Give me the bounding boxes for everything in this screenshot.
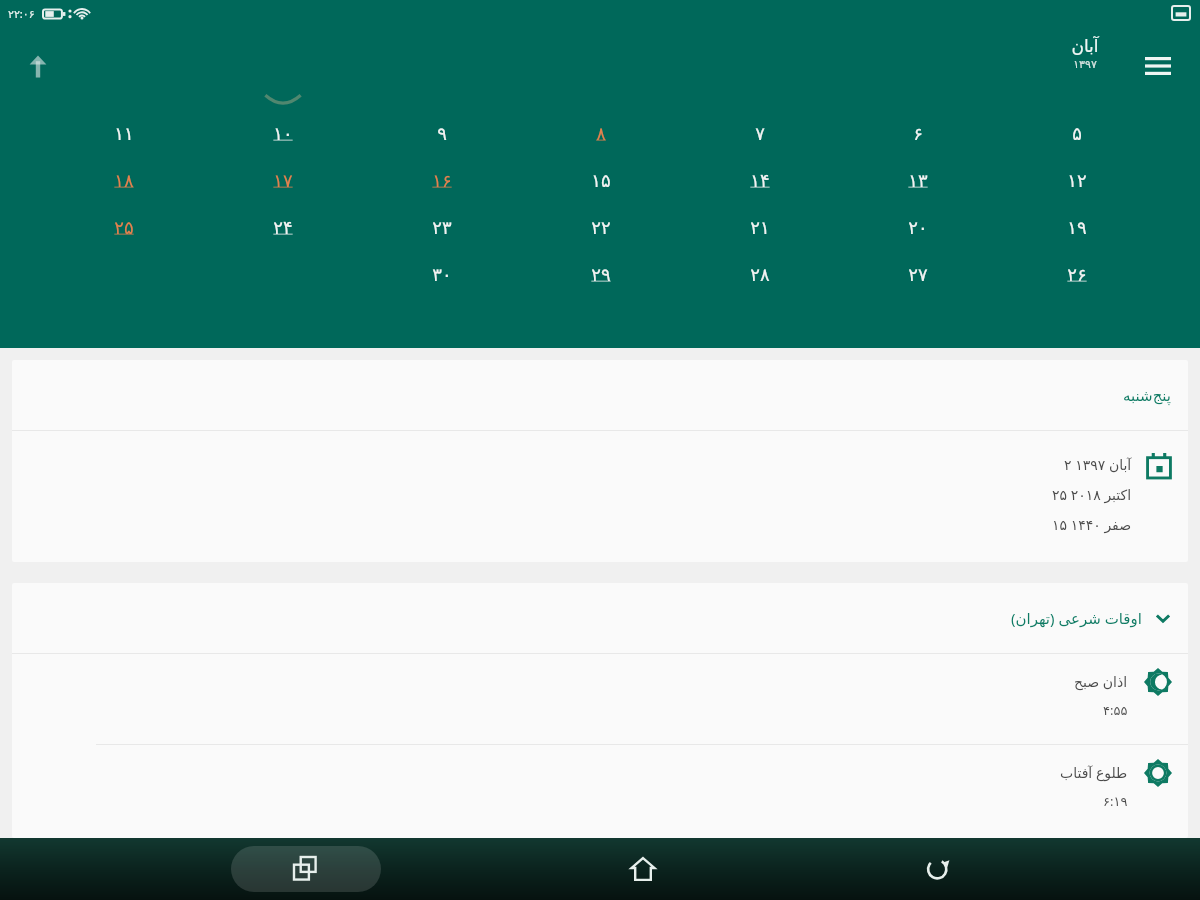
staticText: ۲۸ [750, 264, 770, 285]
button[interactable]: ۱۴ [727, 158, 793, 202]
button[interactable]: ۱۱ [91, 111, 157, 155]
staticText: اوقات شرعی (تهران) [1011, 608, 1142, 628]
button[interactable]: اوقات شرعی (تهران) [12, 583, 1188, 653]
staticText: ۱۴ [750, 170, 770, 191]
staticText: ۲۶ [1067, 264, 1087, 285]
button[interactable]: ۱۹ [1044, 205, 1110, 249]
button[interactable]: ۲۹ [568, 252, 634, 296]
button[interactable]: ۱۷ [250, 158, 316, 202]
staticText: ۱۶ [432, 170, 452, 191]
staticText: ۲۵ [114, 217, 134, 238]
other: Screenshot [1172, 6, 1190, 20]
button[interactable]: ۲۱ [727, 205, 793, 249]
button[interactable]: ۱۶ [409, 158, 475, 202]
staticText: ۱۸ [114, 170, 134, 191]
button[interactable]: ۱۳ [885, 158, 951, 202]
button[interactable]: Scroll up [16, 44, 60, 88]
button[interactable]: ۱۲ [1044, 158, 1110, 202]
staticText: ۱۵ صفر ۱۴۴۰ [1052, 515, 1132, 534]
staticText: طلوع آفتاب [1060, 763, 1128, 782]
button[interactable]: آبان [1045, 36, 1125, 71]
button[interactable]: ۵ [1044, 111, 1110, 155]
staticText: ۶:۱۹ [1103, 792, 1128, 810]
button[interactable]: ۲۰ [885, 205, 951, 249]
staticText: ۱۱ [114, 123, 134, 144]
staticText: ۱۷ [273, 170, 293, 191]
button[interactable]: طلوع آفتاب [12, 745, 1188, 835]
button[interactable]: Back [906, 838, 970, 900]
button[interactable]: Recents [231, 846, 381, 892]
staticText: ۱۳ [908, 170, 928, 191]
button[interactable]: ۲۲ [568, 205, 634, 249]
staticText: ۹ [437, 123, 447, 144]
button[interactable]: ۲۳ [409, 205, 475, 249]
staticText: ۶ [913, 123, 923, 144]
staticText: ۵ [1072, 123, 1082, 144]
staticText: پنج‌شنبه [1123, 387, 1172, 404]
staticText: ۲۴ [273, 217, 293, 238]
staticText: ۱۵ [591, 170, 611, 191]
staticText: ۲۰ [908, 217, 928, 238]
button[interactable]: Home [611, 838, 675, 900]
staticText: ۸ [596, 123, 606, 144]
staticText: ۲۱ [750, 217, 770, 238]
button[interactable]: اذان صبح [12, 654, 1188, 744]
button[interactable]: ۹ [409, 111, 475, 155]
button[interactable]: Menu [1134, 42, 1182, 90]
button[interactable]: ۲۵ [91, 205, 157, 249]
button[interactable]: پنج‌شنبه [12, 360, 1188, 562]
staticText: ۷ [755, 123, 765, 144]
button[interactable]: ۱۸ [91, 158, 157, 202]
button[interactable]: ۶ [885, 111, 951, 155]
button[interactable]: ۱۰ [250, 111, 316, 155]
button[interactable]: ۳۰ [409, 252, 475, 296]
staticText: ۱۹ [1067, 217, 1087, 238]
staticText: ۴:۵۵ [1103, 701, 1128, 719]
button[interactable]: ۱۵ [568, 158, 634, 202]
button[interactable]: ۲۷ [885, 252, 951, 296]
button[interactable]: ۷ [727, 111, 793, 155]
staticText: ۲۹ [591, 264, 611, 285]
button[interactable]: ۸ [568, 111, 634, 155]
button[interactable]: ۲۶ [1044, 252, 1110, 296]
staticText: ۲۵ اکتبر ۲۰۱۸ [1052, 485, 1132, 504]
staticText: ۲۲:۰۶ [8, 6, 35, 21]
staticText: ۲۲ [591, 217, 611, 238]
staticText: آبان [1071, 36, 1099, 56]
staticText: اذان صبح [1074, 672, 1128, 691]
staticText: ۱۰ [273, 123, 293, 144]
staticText: ۲۷ [908, 264, 928, 285]
staticText: ۱۳۹۷ [1073, 58, 1097, 71]
staticText: ۲ آبان ۱۳۹۷ [1064, 455, 1132, 474]
staticText: ۲۳ [432, 217, 452, 238]
staticText: ۱۲ [1067, 170, 1087, 191]
staticText: ۳۰ [432, 264, 452, 285]
button[interactable]: ۲۴ [250, 205, 316, 249]
button[interactable]: ۲۸ [727, 252, 793, 296]
